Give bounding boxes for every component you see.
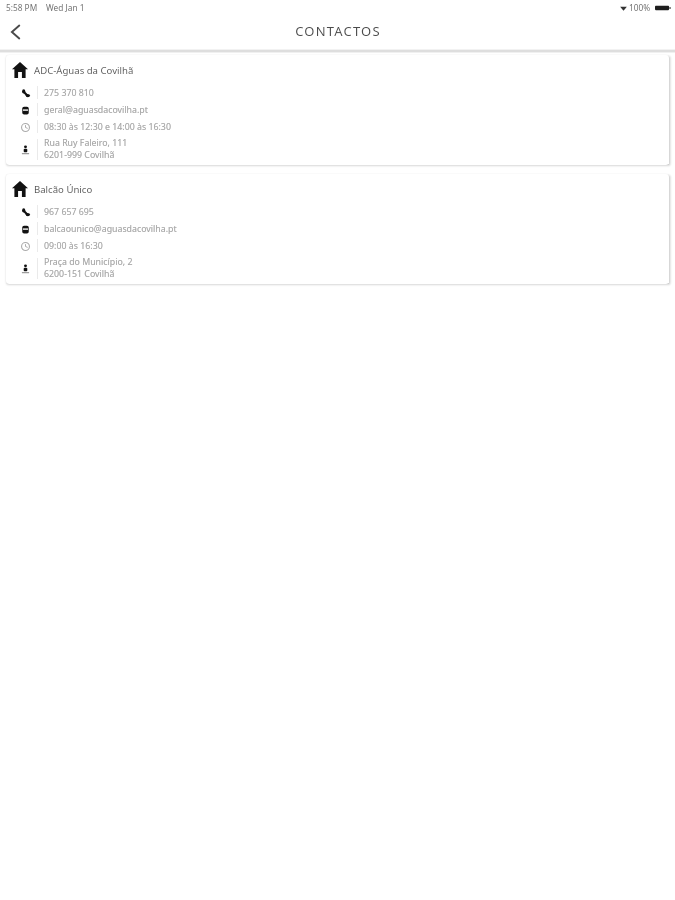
staticText: 08:30 às 12:30 e 14:00 às 16:30 [44, 121, 171, 133]
button[interactable]: Balcão Único [6, 174, 669, 204]
staticText: Rua Ruy Faleiro, 111 [44, 137, 128, 149]
button[interactable]: Call [6, 84, 669, 101]
other: Call [21, 89, 30, 98]
staticText: Balcão Único [34, 183, 93, 196]
other: Address [21, 264, 30, 273]
other: Call [21, 208, 30, 217]
staticText: 100% [629, 2, 651, 13]
staticText: 5:58 PM [6, 2, 38, 13]
other: Opening hours [21, 123, 30, 132]
staticText: CONTACTOS [295, 22, 381, 40]
other: Address [21, 145, 30, 154]
button[interactable]: Email [6, 101, 669, 118]
staticText: geral@aguasdacovilha.pt [44, 104, 148, 116]
other: Email [21, 225, 30, 234]
button[interactable]: Email [6, 220, 669, 237]
staticText: balcaounico@aguasdacovilha.pt [44, 223, 177, 235]
staticText: Praça do Município, 2 [44, 256, 133, 268]
button[interactable]: ADC-Águas da Covilhã [6, 55, 669, 85]
staticText: 09:00 às 16:30 [44, 240, 103, 252]
staticText: 6201-999 Covilhã [44, 149, 115, 161]
staticText: 967 657 695 [44, 206, 94, 218]
other: Opening hours [21, 242, 30, 251]
button[interactable]: Call [6, 203, 669, 220]
button[interactable]: Opening hours [6, 118, 669, 135]
button[interactable]: Back [2, 19, 28, 45]
other: Email [21, 106, 30, 115]
button[interactable]: Opening hours [6, 237, 669, 254]
button[interactable]: Address [6, 137, 669, 161]
button[interactable]: Address [6, 256, 669, 280]
staticText: ADC-Águas da Covilhã [34, 64, 134, 77]
staticText: 275 370 810 [44, 87, 94, 99]
staticText: Wed Jan 1 [46, 2, 85, 13]
staticText: 6200-151 Covilhã [44, 268, 115, 280]
